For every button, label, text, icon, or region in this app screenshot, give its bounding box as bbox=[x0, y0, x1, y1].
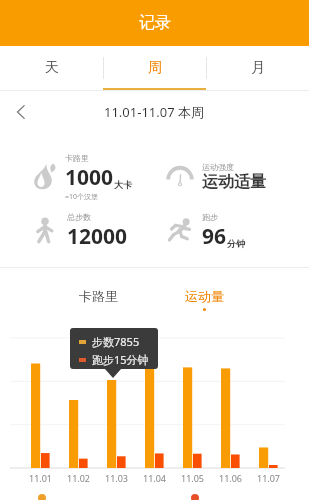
staticText: 11.01-11.07 本周 bbox=[104, 103, 205, 121]
staticText: 11.06 bbox=[219, 472, 243, 484]
staticText: 11.03 bbox=[105, 472, 129, 484]
staticText: 月 bbox=[251, 59, 265, 77]
button[interactable]: 卡路里 bbox=[28, 152, 132, 202]
staticText: 11.07 bbox=[257, 472, 281, 484]
staticText: 卡路里 bbox=[79, 288, 118, 304]
button[interactable]: Previous week bbox=[0, 91, 42, 133]
staticText: 运动强度 bbox=[202, 162, 234, 172]
staticText: =10个汉堡 bbox=[65, 192, 99, 202]
staticText: 运动适量 bbox=[202, 172, 266, 192]
staticText: 大卡 bbox=[114, 179, 132, 190]
staticText: 运动量 bbox=[185, 288, 224, 304]
staticText: 12000 bbox=[67, 222, 128, 251]
staticText: 分钟 bbox=[227, 238, 245, 249]
button[interactable]: 跑步 bbox=[165, 206, 245, 256]
staticText: 总步数 bbox=[67, 212, 91, 222]
staticText: 11.01 bbox=[29, 472, 53, 484]
staticText: 跑步 bbox=[202, 212, 218, 222]
button[interactable]: 运动量 bbox=[178, 288, 230, 314]
button[interactable]: 天 bbox=[0, 46, 103, 90]
button[interactable]: 卡路里 bbox=[72, 288, 124, 314]
button[interactable]: 周 bbox=[103, 46, 206, 90]
staticText: 1000 bbox=[65, 163, 114, 192]
staticText: 96 bbox=[202, 222, 227, 251]
button[interactable]: 月 bbox=[206, 46, 309, 90]
button[interactable]: 运动强度 bbox=[165, 152, 266, 202]
button[interactable]: 总步数 bbox=[30, 206, 128, 256]
staticText: 卡路里 bbox=[65, 153, 89, 163]
staticText: 跑步15分钟 bbox=[92, 352, 149, 367]
button[interactable]: 步数7855 bbox=[70, 328, 158, 369]
staticText: 周 bbox=[148, 59, 162, 77]
staticText: 步数7855 bbox=[92, 334, 140, 349]
staticText: 11.05 bbox=[181, 472, 205, 484]
staticText: 11.02 bbox=[67, 472, 91, 484]
staticText: 天 bbox=[45, 59, 59, 77]
staticText: 记录 bbox=[139, 13, 171, 33]
staticText: 11.04 bbox=[143, 472, 167, 484]
